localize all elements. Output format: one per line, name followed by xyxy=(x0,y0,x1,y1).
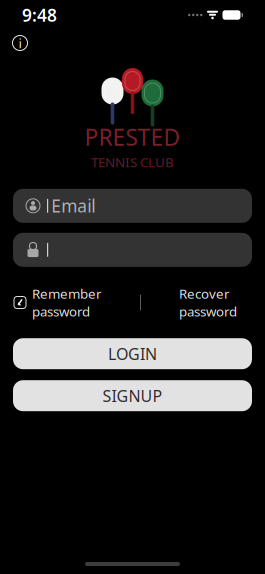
staticText: Email xyxy=(51,194,95,217)
button[interactable]: Remember password xyxy=(14,281,102,324)
button[interactable]: LOGIN xyxy=(13,338,252,369)
button[interactable]: Recover password xyxy=(179,281,237,324)
staticText: TENNIS CLUB xyxy=(91,153,174,171)
button[interactable]: Information xyxy=(5,30,35,56)
staticText: Remember password xyxy=(32,285,102,320)
staticText: Recover password xyxy=(179,285,237,320)
staticText: SIGNUP xyxy=(102,385,162,406)
button[interactable]: SIGNUP xyxy=(13,380,252,411)
staticText: LOGIN xyxy=(108,343,157,364)
staticText: i xyxy=(18,34,21,52)
staticText: PRESTED xyxy=(84,122,180,152)
staticText: 9:48 xyxy=(22,3,57,26)
